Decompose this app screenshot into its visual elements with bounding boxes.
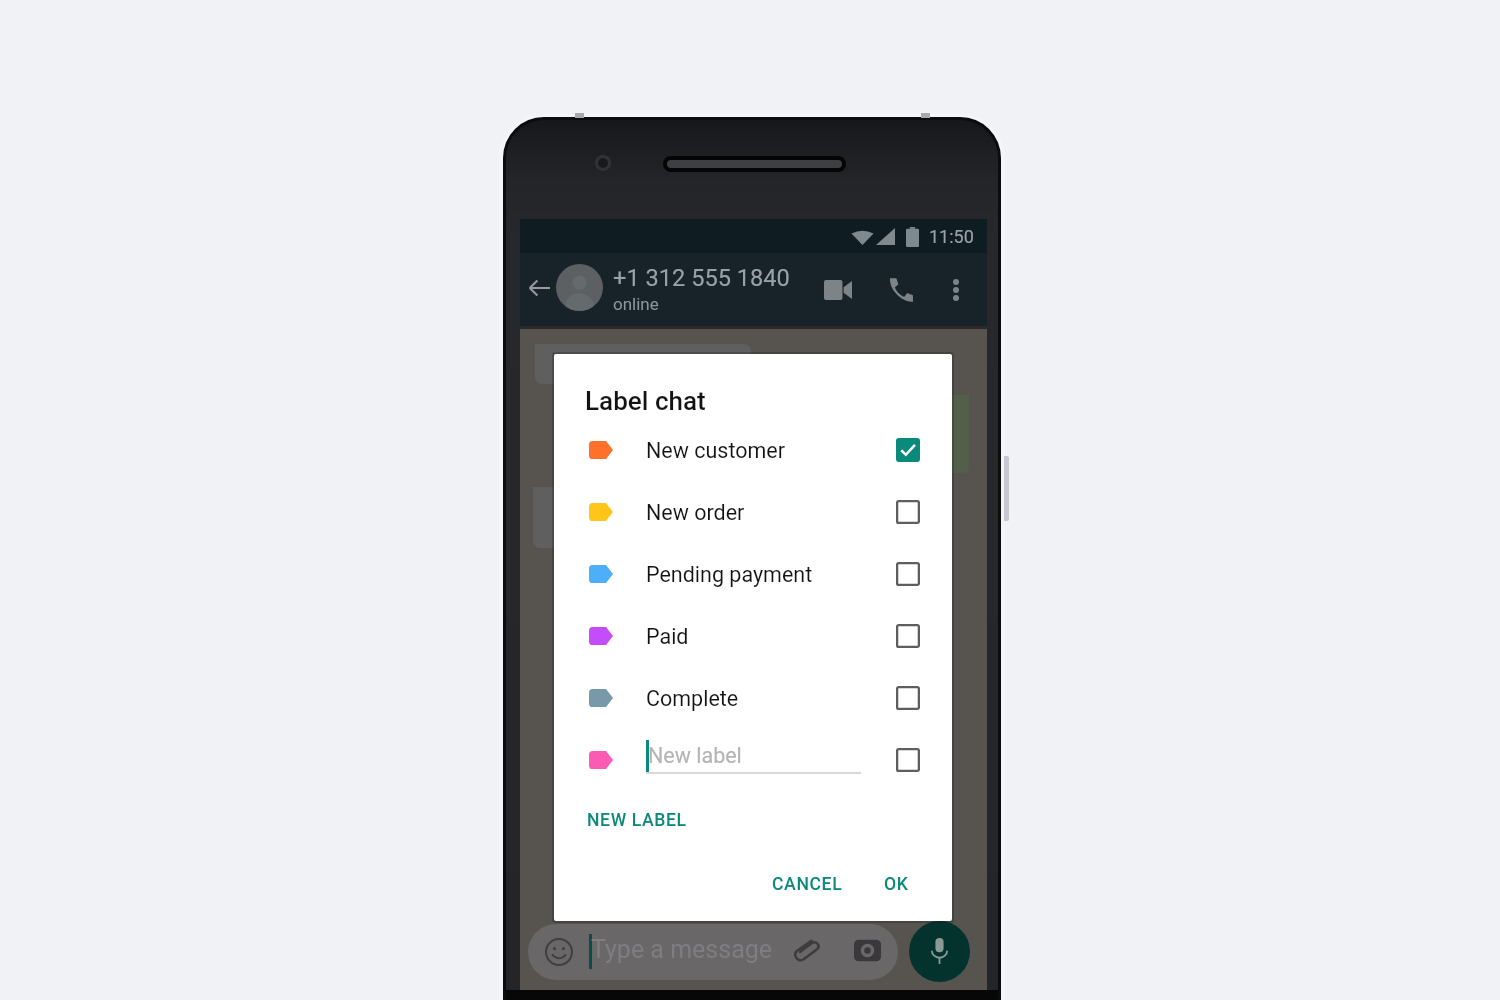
- staticText: New label: [648, 743, 742, 768]
- staticText: OK: [884, 874, 909, 895]
- staticText: NEW LABEL: [587, 810, 687, 831]
- button[interactable]: OK: [874, 866, 919, 903]
- staticText: Type a message: [591, 935, 773, 964]
- button[interactable]: New customer: [554, 419, 952, 481]
- button[interactable]: New label: [646, 735, 861, 785]
- staticText: New customer: [646, 438, 786, 463]
- button[interactable]: Voice call: [879, 268, 923, 312]
- staticText: 11:50: [929, 226, 974, 247]
- button[interactable]: More options: [936, 270, 976, 310]
- button[interactable]: NEW LABEL: [579, 804, 695, 837]
- staticText: online: [613, 294, 659, 314]
- button[interactable]: Back: [522, 271, 556, 305]
- staticText: +1 312 555 1840: [613, 264, 790, 292]
- staticText: Pending payment: [646, 562, 813, 587]
- button[interactable]: Complete: [554, 667, 952, 729]
- staticText: New order: [646, 500, 745, 525]
- button[interactable]: Pending payment: [554, 543, 952, 605]
- button[interactable]: Record voice message: [909, 921, 970, 982]
- button[interactable]: CANCEL: [762, 866, 853, 903]
- button[interactable]: New order: [554, 481, 952, 543]
- staticText: Complete: [646, 686, 739, 711]
- staticText: CANCEL: [772, 874, 843, 895]
- button[interactable]: Video call: [816, 268, 860, 312]
- button[interactable]: Paid: [554, 605, 952, 667]
- staticText: Paid: [646, 624, 689, 649]
- button[interactable]: Type a message: [528, 924, 898, 980]
- staticText: Label chat: [585, 386, 706, 416]
